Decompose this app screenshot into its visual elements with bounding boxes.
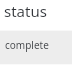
staticText: status [4, 1, 47, 21]
staticText: complete [5, 38, 49, 52]
button[interactable]: complete [0, 31, 72, 64]
